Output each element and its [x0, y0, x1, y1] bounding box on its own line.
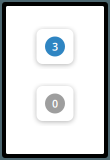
- staticText: 0: [52, 96, 58, 111]
- staticText: 3: [52, 39, 58, 54]
- button[interactable]: 3: [36, 29, 73, 64]
- button[interactable]: 0: [36, 86, 73, 121]
